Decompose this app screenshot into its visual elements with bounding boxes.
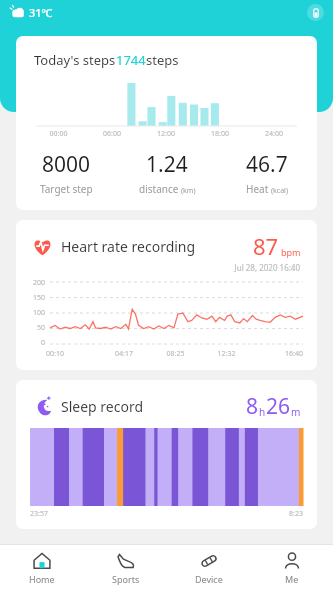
staticText: Today's steps bbox=[34, 51, 116, 69]
staticText: 0 bbox=[41, 338, 46, 348]
button[interactable]: Home bbox=[0, 545, 84, 592]
staticText: 100 bbox=[33, 308, 46, 318]
staticText: steps bbox=[146, 51, 179, 69]
staticText: 1744 bbox=[116, 51, 146, 69]
staticText: 23:57 bbox=[30, 509, 48, 519]
staticText: 31℃ bbox=[29, 5, 53, 20]
staticText: 06:00 bbox=[85, 129, 139, 139]
button[interactable]: Device bbox=[167, 545, 250, 592]
staticText: 150 bbox=[33, 293, 46, 303]
staticText: 00:00 bbox=[32, 129, 85, 139]
staticText: 12:32 bbox=[201, 349, 252, 359]
staticText: 16:40 bbox=[252, 349, 303, 359]
staticText: 12:00 bbox=[139, 129, 193, 139]
staticText: m bbox=[291, 405, 301, 419]
staticText: Home bbox=[29, 573, 55, 585]
staticText: 24:00 bbox=[247, 129, 301, 139]
staticText: 1.24 bbox=[146, 150, 188, 179]
staticText: distance bbox=[139, 182, 181, 196]
staticText: 8 bbox=[246, 392, 259, 421]
staticText: 04:17 bbox=[98, 349, 150, 359]
staticText: (kcal) bbox=[271, 186, 289, 196]
staticText: Jul 28, 2020 16:40 bbox=[16, 262, 300, 273]
staticText: Target step bbox=[40, 182, 93, 196]
button[interactable]: Sleep record bbox=[16, 380, 317, 529]
staticText: 87 bbox=[253, 231, 279, 261]
staticText: bpm bbox=[281, 246, 301, 258]
button[interactable]: Today's steps bbox=[16, 36, 317, 210]
button[interactable]: Heart rate recording bbox=[16, 220, 317, 370]
staticText: 8000 bbox=[42, 150, 91, 179]
staticText: h bbox=[259, 405, 266, 419]
staticText: 50 bbox=[37, 323, 46, 333]
staticText: (km) bbox=[181, 186, 196, 196]
staticText: 18:00 bbox=[193, 129, 247, 139]
staticText: Device bbox=[195, 573, 223, 585]
staticText: 00:10 bbox=[46, 349, 98, 359]
staticText: 08:25 bbox=[150, 349, 201, 359]
staticText: 26 bbox=[266, 392, 291, 421]
staticText: Me bbox=[285, 573, 299, 585]
staticText: 8:23 bbox=[289, 509, 303, 519]
button[interactable]: Me bbox=[250, 545, 333, 592]
staticText: Sports bbox=[112, 573, 140, 585]
button[interactable]: Sports bbox=[84, 545, 167, 592]
staticText: Heart rate recording bbox=[61, 237, 196, 256]
staticText: 200 bbox=[33, 278, 46, 288]
staticText: 46.7 bbox=[246, 150, 288, 179]
staticText: Heat bbox=[246, 182, 271, 196]
staticText: Sleep record bbox=[61, 397, 144, 416]
